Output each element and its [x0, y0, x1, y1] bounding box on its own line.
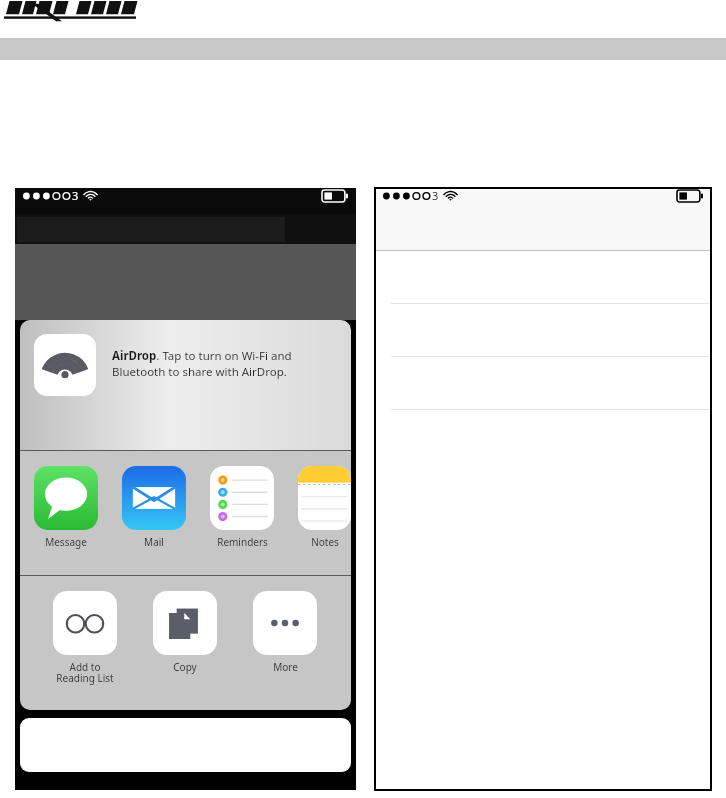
button[interactable]: More — [248, 591, 322, 674]
staticText: Reminders — [217, 535, 268, 549]
staticText: Mail — [144, 535, 164, 549]
button[interactable]: Copy — [148, 591, 222, 674]
button[interactable] — [375, 251, 711, 304]
button[interactable]: Mail — [122, 466, 186, 549]
staticText: 3 — [432, 188, 439, 203]
staticText: AirDrop. Tap to turn on Wi-Fi and Blueto… — [112, 348, 322, 379]
button[interactable]: Reminders — [210, 466, 274, 549]
button[interactable]: Add to Reading List — [48, 591, 122, 685]
button[interactable]: Notes — [298, 466, 351, 549]
staticText: Copy — [173, 660, 197, 674]
button[interactable]: Cancel — [20, 718, 351, 772]
button[interactable]: AirDrop. Tap to turn on Wi-Fi and Blueto… — [20, 320, 351, 450]
staticText: Notes — [311, 535, 339, 549]
staticText: Add to Reading List — [56, 660, 114, 685]
button[interactable] — [375, 304, 711, 357]
button[interactable]: Message — [34, 466, 98, 549]
staticText: 3 — [72, 188, 79, 203]
button[interactable] — [375, 357, 711, 410]
staticText: Message — [45, 535, 87, 549]
staticText: More — [273, 660, 298, 674]
